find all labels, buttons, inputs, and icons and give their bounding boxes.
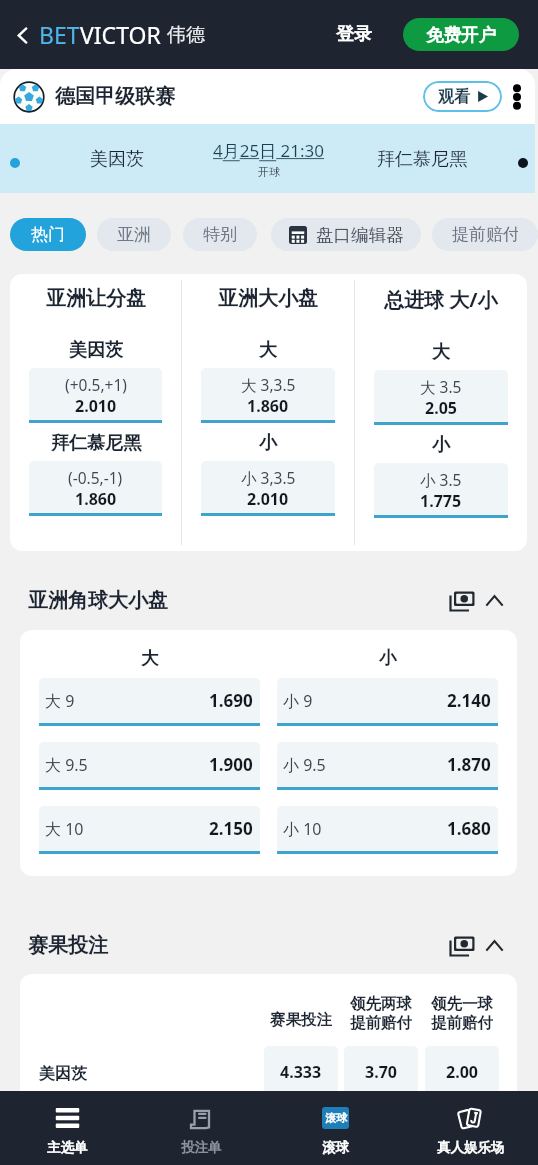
button[interactable]: 登录 bbox=[328, 15, 380, 54]
staticText: 4月25日 21:30 bbox=[213, 139, 325, 162]
button[interactable]: 大 10 bbox=[39, 806, 260, 851]
staticText: 领先两球 提前赔付 bbox=[350, 994, 412, 1030]
staticText: 伟德 bbox=[167, 23, 205, 47]
button[interactable]: Collapse section bbox=[481, 932, 507, 958]
staticText: 大 bbox=[432, 341, 450, 364]
staticText: 小 bbox=[432, 434, 450, 457]
staticText: 1.860 bbox=[75, 488, 117, 510]
staticText: 2.00 bbox=[446, 1061, 478, 1083]
button[interactable]: Cash out bbox=[447, 585, 477, 615]
staticText: 真人娱乐场 bbox=[437, 1139, 505, 1156]
staticText: 登录 bbox=[336, 23, 372, 46]
staticText: 小 bbox=[379, 647, 397, 669]
staticText: 小 9.5 bbox=[283, 754, 326, 776]
button[interactable]: Back bbox=[7, 20, 37, 50]
button[interactable]: 真人娱乐场 bbox=[403, 1091, 538, 1165]
staticText: 总进球 大/小 bbox=[384, 286, 498, 313]
button[interactable]: Collapse section bbox=[481, 587, 507, 613]
staticText: 小 10 bbox=[283, 818, 322, 840]
staticText: 亚洲大小盘 bbox=[218, 286, 318, 311]
button[interactable]: 投注单 bbox=[134, 1091, 268, 1165]
button[interactable]: 小 3.5 bbox=[374, 463, 508, 515]
staticText: 1.870 bbox=[447, 753, 491, 776]
staticText: 大 9.5 bbox=[45, 754, 88, 776]
staticText: 提前赔付 bbox=[452, 224, 518, 245]
button[interactable]: 小 3,3.5 bbox=[201, 461, 335, 513]
button[interactable]: 盘口编辑器 bbox=[271, 218, 421, 251]
button[interactable]: 小 9 bbox=[277, 678, 498, 723]
staticText: 领先一球 提前赔付 bbox=[431, 994, 493, 1030]
staticText: 开球 bbox=[258, 165, 280, 179]
button[interactable]: (-0.5,-1) bbox=[29, 461, 162, 513]
staticText: 主选单 bbox=[47, 1139, 88, 1156]
button[interactable]: 大 9.5 bbox=[39, 742, 260, 787]
staticText: 观看 bbox=[438, 87, 470, 107]
staticText: 亚洲角球大小盘 bbox=[28, 588, 168, 613]
staticText: 2.010 bbox=[75, 395, 117, 417]
staticText: 盘口编辑器 bbox=[316, 224, 404, 246]
button[interactable]: 热门 bbox=[10, 218, 86, 251]
staticText: 赛果投注 bbox=[270, 1010, 332, 1030]
staticText: 2.140 bbox=[447, 689, 491, 712]
button[interactable]: 2.00 bbox=[425, 1046, 499, 1098]
staticText: 美因茨 bbox=[90, 148, 144, 171]
staticText: 赛果投注 bbox=[28, 933, 108, 958]
staticText: 大 3.5 bbox=[420, 376, 462, 397]
staticText: 热门 bbox=[31, 224, 65, 245]
staticText: 美因茨 bbox=[39, 1064, 87, 1084]
staticText: 2.150 bbox=[209, 817, 253, 840]
button[interactable]: 大 3.5 bbox=[374, 370, 508, 422]
staticText: 小 9 bbox=[283, 690, 313, 712]
staticText: 大 3,3.5 bbox=[241, 374, 296, 395]
staticText: 1.690 bbox=[209, 689, 253, 712]
staticText: 小 3.5 bbox=[420, 469, 462, 490]
staticText: 大 bbox=[259, 339, 277, 362]
button[interactable]: 主选单 bbox=[0, 1091, 134, 1165]
button[interactable]: 亚洲 bbox=[97, 218, 171, 251]
staticText: 1.900 bbox=[209, 753, 253, 776]
button[interactable]: 3.70 bbox=[344, 1046, 418, 1098]
button[interactable]: 4.333 bbox=[264, 1046, 338, 1098]
staticText: 1.775 bbox=[420, 490, 462, 512]
button[interactable]: 免费开户 bbox=[403, 18, 519, 51]
staticText: 1.680 bbox=[447, 817, 491, 840]
staticText: 德国甲级联赛 bbox=[55, 84, 175, 109]
staticText: 投注单 bbox=[181, 1139, 222, 1156]
button[interactable]: (+0.5,+1) bbox=[29, 368, 162, 420]
button[interactable]: More options bbox=[502, 82, 532, 112]
staticText: 滚球 bbox=[325, 1111, 347, 1125]
staticText: 2.010 bbox=[247, 488, 289, 510]
button[interactable]: 小 9.5 bbox=[277, 742, 498, 787]
staticText: 1.860 bbox=[247, 395, 289, 417]
staticText: 小 bbox=[259, 432, 277, 455]
staticText: 滚球 bbox=[322, 1139, 349, 1156]
staticText: 4.333 bbox=[280, 1061, 322, 1083]
button[interactable]: 小 10 bbox=[277, 806, 498, 851]
staticText: 3.70 bbox=[365, 1061, 397, 1083]
staticText: 大 10 bbox=[45, 818, 84, 840]
staticText: 大 9 bbox=[45, 690, 75, 712]
staticText: 亚洲 bbox=[117, 224, 151, 245]
staticText: 免费开户 bbox=[426, 24, 496, 46]
button[interactable]: Cash out bbox=[447, 930, 477, 960]
staticText: (+0.5,+1) bbox=[65, 374, 127, 395]
staticText: VICTOR bbox=[80, 19, 161, 50]
staticText: 拜仁慕尼黑 bbox=[377, 148, 467, 171]
button[interactable]: 提前赔付 bbox=[432, 218, 538, 251]
staticText: 拜仁慕尼黑 bbox=[51, 432, 141, 455]
staticText: 美因茨 bbox=[69, 339, 123, 362]
staticText: 亚洲让分盘 bbox=[46, 286, 146, 311]
staticText: BET bbox=[39, 19, 80, 50]
button[interactable]: 滚球 bbox=[268, 1091, 403, 1165]
button[interactable]: 大 9 bbox=[39, 678, 260, 723]
button[interactable]: 特别 bbox=[183, 218, 257, 251]
button[interactable]: 大 3,3.5 bbox=[201, 368, 335, 420]
button[interactable]: 观看 bbox=[423, 81, 502, 112]
staticText: 大 bbox=[141, 647, 159, 669]
staticText: 小 3,3.5 bbox=[241, 467, 296, 488]
staticText: 2.05 bbox=[425, 397, 457, 419]
staticText: 特别 bbox=[203, 224, 237, 245]
staticText: (-0.5,-1) bbox=[68, 467, 123, 488]
